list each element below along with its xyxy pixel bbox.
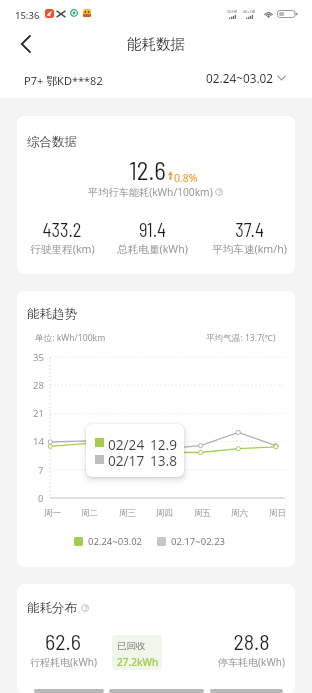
staticText: 4G+ HD xyxy=(243,9,256,14)
staticText: 21 xyxy=(33,407,44,420)
staticText: 总耗电量(kWh) xyxy=(117,242,188,256)
staticText: 周四 xyxy=(156,508,173,519)
staticText: 停车耗电(kWh) xyxy=(218,655,285,669)
staticText: 62.6 xyxy=(45,628,81,654)
staticText: 已回收 xyxy=(117,640,146,652)
staticText: 7 xyxy=(38,464,44,477)
staticText: 02/17 xyxy=(108,451,145,470)
staticText: 行驶里程(km) xyxy=(30,242,95,256)
staticText: 周一 xyxy=(44,508,61,519)
staticText: 5G HD xyxy=(227,9,238,14)
staticText: 单位: kWh/100km xyxy=(35,332,106,344)
staticText: 综合数据 xyxy=(27,134,77,150)
staticText: P7+ 鄂KD***82 xyxy=(24,73,103,88)
staticText: 37.4 xyxy=(235,218,264,240)
staticText: 周日 xyxy=(269,508,286,519)
button[interactable]: Back xyxy=(12,30,40,58)
staticText: 平均车速(km/h) xyxy=(212,242,287,256)
staticText: 15:36 xyxy=(15,9,40,22)
staticText: 12.9 xyxy=(150,435,177,454)
staticText: 周六 xyxy=(231,508,248,519)
staticText: 周二 xyxy=(81,508,98,519)
staticText: 能耗数据 xyxy=(127,35,185,53)
staticText: 13.8 xyxy=(150,451,177,470)
staticText: ? xyxy=(84,604,87,612)
staticText: 能耗分布 xyxy=(27,600,77,616)
staticText: 平均行车能耗(kWh/100km) xyxy=(88,185,213,199)
staticText: 35 xyxy=(33,351,44,364)
staticText: 行程耗电(kWh) xyxy=(30,655,97,669)
staticText: 0.8% xyxy=(174,171,198,185)
staticText: 周五 xyxy=(194,508,211,519)
staticText: 能耗趋势 xyxy=(27,306,77,322)
staticText: 02.24~03.02 xyxy=(206,70,274,86)
staticText: 433.2 xyxy=(42,218,82,240)
staticText: 平均气温: 13.7(℃) xyxy=(206,332,276,344)
staticText: 02.17~02.23 xyxy=(171,535,225,548)
staticText: 14 xyxy=(33,435,44,448)
staticText: 91.4 xyxy=(139,218,166,240)
staticText: 27.2kWh xyxy=(117,655,159,669)
staticText: 02/24 xyxy=(108,435,145,454)
staticText: 0 xyxy=(38,492,44,505)
staticText: 02.24~03.02 xyxy=(88,535,142,548)
staticText: ? xyxy=(218,188,221,196)
button[interactable]: 02.24~03.02 xyxy=(206,70,286,86)
staticText: 12.6 xyxy=(129,155,166,185)
staticText: 28.8 xyxy=(233,628,270,654)
staticText: 周三 xyxy=(119,508,136,519)
staticText: 28 xyxy=(33,379,44,392)
